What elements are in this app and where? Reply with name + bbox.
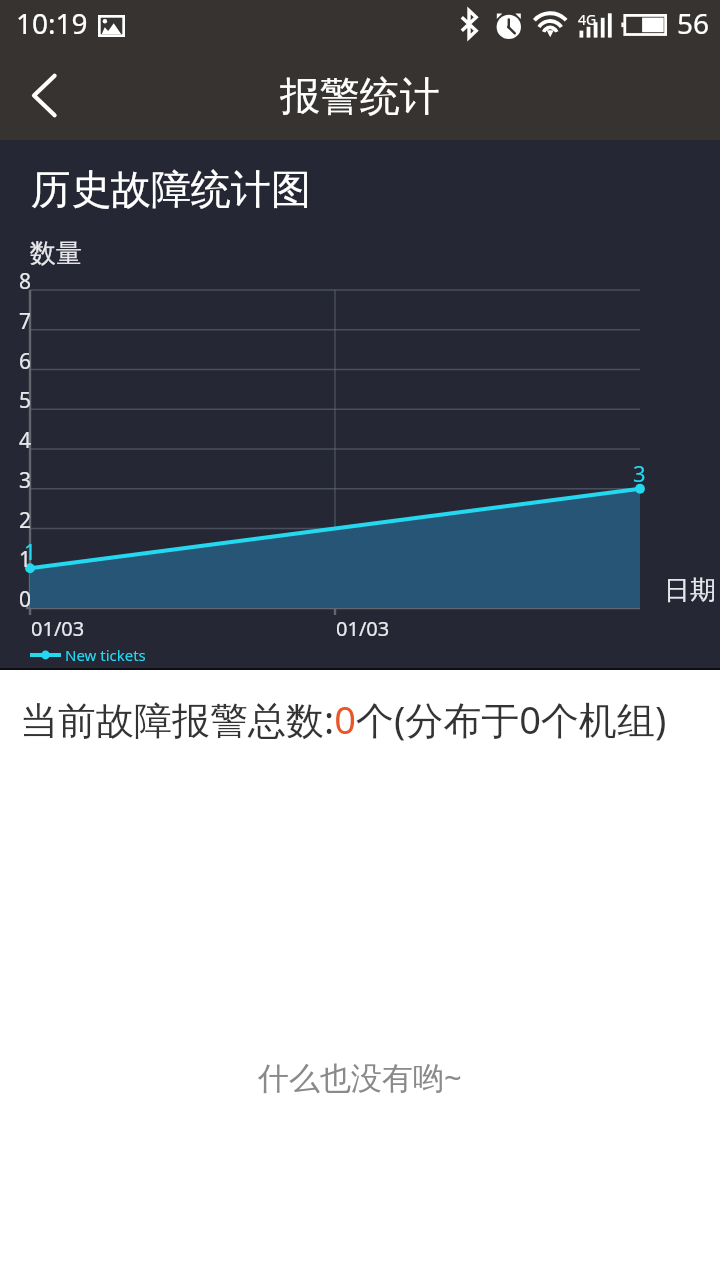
staticText: 2 (19, 506, 32, 535)
staticText: 日期 (664, 574, 716, 607)
staticText: 6 (19, 347, 32, 376)
staticText: 什么也没有哟~ (258, 1056, 462, 1098)
staticText: 01/03 (336, 615, 390, 642)
staticText: 01/03 (31, 615, 85, 642)
staticText: 4G (578, 10, 597, 29)
staticText: 56 (677, 4, 710, 42)
staticText: 10:19 (16, 4, 88, 42)
staticText: 7 (19, 307, 32, 336)
staticText: 当前故障报警总数:0个(分布于0个机组) (20, 693, 667, 745)
staticText: 4 (19, 426, 32, 455)
staticText: 5 (19, 386, 32, 415)
staticText: 0 (19, 585, 32, 614)
staticText: 8 (19, 267, 32, 296)
staticText: 1 (19, 545, 32, 574)
staticText: 报警统计 (280, 71, 440, 121)
staticText: 3 (19, 466, 32, 495)
staticText: 历史故障统计图 (31, 164, 311, 214)
staticText: 数量 (30, 237, 82, 270)
button[interactable]: Back (0, 59, 78, 137)
staticText: New tickets (65, 645, 146, 665)
staticText: 1 (24, 538, 37, 567)
staticText: 3 (633, 458, 646, 488)
